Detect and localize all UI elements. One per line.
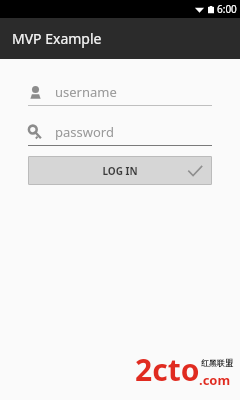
button[interactable]: Password <box>28 123 212 146</box>
other: Password <box>28 125 43 140</box>
staticText: password <box>55 123 114 141</box>
other: Username <box>28 85 43 100</box>
button[interactable]: Username <box>28 83 212 106</box>
staticText: .com <box>199 371 231 389</box>
staticText: 6:00 <box>217 2 237 16</box>
staticText: MVP Example <box>12 29 102 48</box>
staticText: 2cto <box>135 349 200 390</box>
staticText: username <box>55 83 117 101</box>
button[interactable]: LOG IN <box>28 156 212 185</box>
staticText: 红黑联盟 <box>201 358 233 368</box>
staticText: LOG IN <box>102 164 138 178</box>
